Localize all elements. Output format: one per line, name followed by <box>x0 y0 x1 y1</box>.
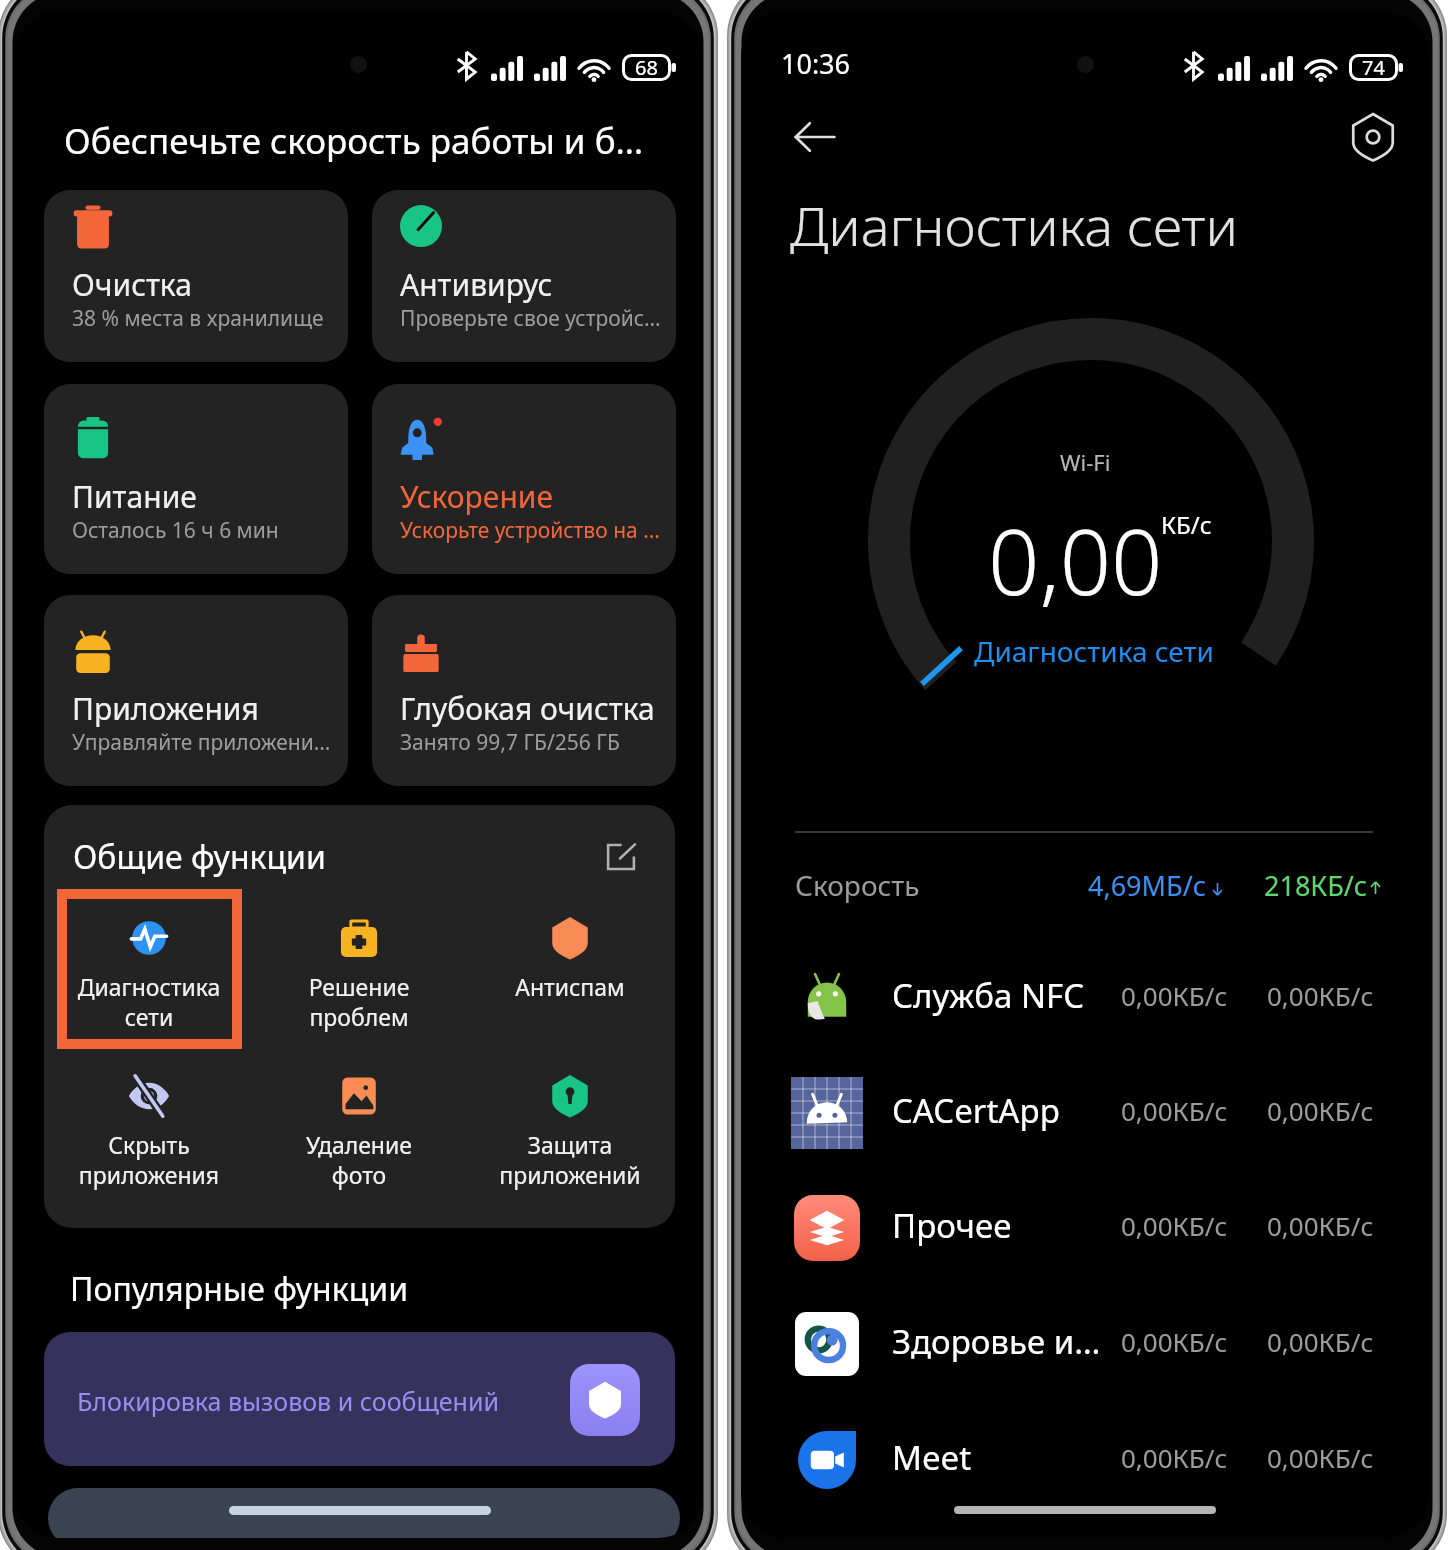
staticText: Скорость <box>795 866 920 904</box>
button[interactable]: Диагностика сети <box>44 889 254 1049</box>
staticText: Скрыть приложения <box>44 1129 254 1191</box>
button[interactable]: Meet <box>792 1403 1376 1517</box>
staticText: Очистка <box>72 264 340 305</box>
staticText: Служба NFC <box>892 973 1085 1018</box>
staticText: Антиспам <box>465 971 675 1002</box>
button[interactable]: Решение проблем <box>254 889 464 1049</box>
button[interactable]: Служба NFC <box>792 941 1376 1055</box>
staticText: Wi-Fi <box>1060 447 1111 477</box>
staticText: 218КБ/с <box>1264 867 1368 904</box>
staticText: 0,00КБ/с <box>1121 1440 1228 1475</box>
staticText: Популярные функции <box>70 1267 409 1311</box>
button[interactable]: Глубокая очистка <box>372 595 676 786</box>
staticText: КБ/с <box>1161 508 1212 541</box>
staticText: 68 <box>635 54 658 81</box>
staticText: CACertApp <box>892 1088 1060 1133</box>
button[interactable]: Диагностика сети <box>974 632 1214 670</box>
staticText: 0,00КБ/с <box>1267 1208 1374 1243</box>
button[interactable]: Back <box>794 114 838 160</box>
button[interactable]: Settings <box>1352 113 1394 161</box>
button[interactable]: Блокировка вызовов и сообщений <box>44 1332 675 1466</box>
staticText: Диагностика сети <box>790 188 1238 262</box>
staticText: 74 <box>1362 54 1385 81</box>
staticText: 0,00КБ/с <box>1121 1208 1228 1243</box>
staticText: Глубокая очистка <box>400 688 668 729</box>
staticText: Здоровье и… <box>892 1319 1101 1364</box>
staticText: Питание <box>72 476 340 517</box>
button[interactable]: Удаление фото <box>254 1047 464 1207</box>
staticText: 0,00КБ/с <box>1267 1440 1374 1475</box>
staticText: 0,00 <box>988 499 1163 622</box>
staticText: 0,00КБ/с <box>1267 1093 1374 1128</box>
staticText: Управляйте приложениями <box>72 728 340 757</box>
button[interactable]: Защита приложений <box>465 1047 675 1207</box>
staticText: Осталось 16 ч 6 мин <box>72 516 340 545</box>
staticText: Прочее <box>892 1203 1012 1248</box>
staticText: 0,00КБ/с <box>1267 978 1374 1013</box>
button[interactable]: CACertApp <box>792 1056 1376 1170</box>
button[interactable]: Здоровье и… <box>792 1287 1376 1401</box>
staticText: 0,00КБ/с <box>1121 1093 1228 1128</box>
staticText: Приложения <box>72 688 340 729</box>
staticText: Антивирус <box>400 264 668 305</box>
staticText: Защита приложений <box>465 1129 675 1191</box>
staticText: 4,69МБ/с <box>1088 867 1206 904</box>
staticText: Ускорьте устройство на 2… <box>400 516 668 545</box>
staticText: Диагностика сети <box>44 971 254 1033</box>
staticText: Проверьте свое устройст… <box>400 304 668 333</box>
staticText: Meet <box>892 1435 972 1480</box>
staticText: 0,00КБ/с <box>1121 978 1228 1013</box>
staticText: Решение проблем <box>254 971 464 1033</box>
staticText: Занято 99,7 ГБ/256 ГБ <box>400 728 668 757</box>
staticText: 0,00КБ/с <box>1267 1324 1374 1359</box>
button[interactable]: Питание <box>44 384 348 574</box>
staticText: Общие функции <box>73 835 326 879</box>
staticText: 38 % места в хранилище <box>72 304 340 333</box>
button[interactable]: Прочее <box>792 1171 1376 1285</box>
staticText: Ускорение <box>400 476 668 517</box>
staticText: Обеспечьте скорость работы и бе… <box>64 117 662 165</box>
button[interactable]: Антивирус <box>372 190 676 362</box>
staticText: Удаление фото <box>254 1129 464 1191</box>
button[interactable]: Скрыть приложения <box>44 1047 254 1207</box>
staticText: 0,00КБ/с <box>1121 1324 1228 1359</box>
button[interactable]: Приложения <box>44 595 348 786</box>
staticText: Блокировка вызовов и сообщений <box>77 1384 500 1418</box>
button[interactable]: Edit <box>606 843 636 871</box>
staticText: 10:36 <box>781 45 851 82</box>
button[interactable]: Ускорение <box>372 384 676 574</box>
button[interactable]: Очистка <box>44 190 348 362</box>
button[interactable]: Антиспам <box>465 889 675 1049</box>
